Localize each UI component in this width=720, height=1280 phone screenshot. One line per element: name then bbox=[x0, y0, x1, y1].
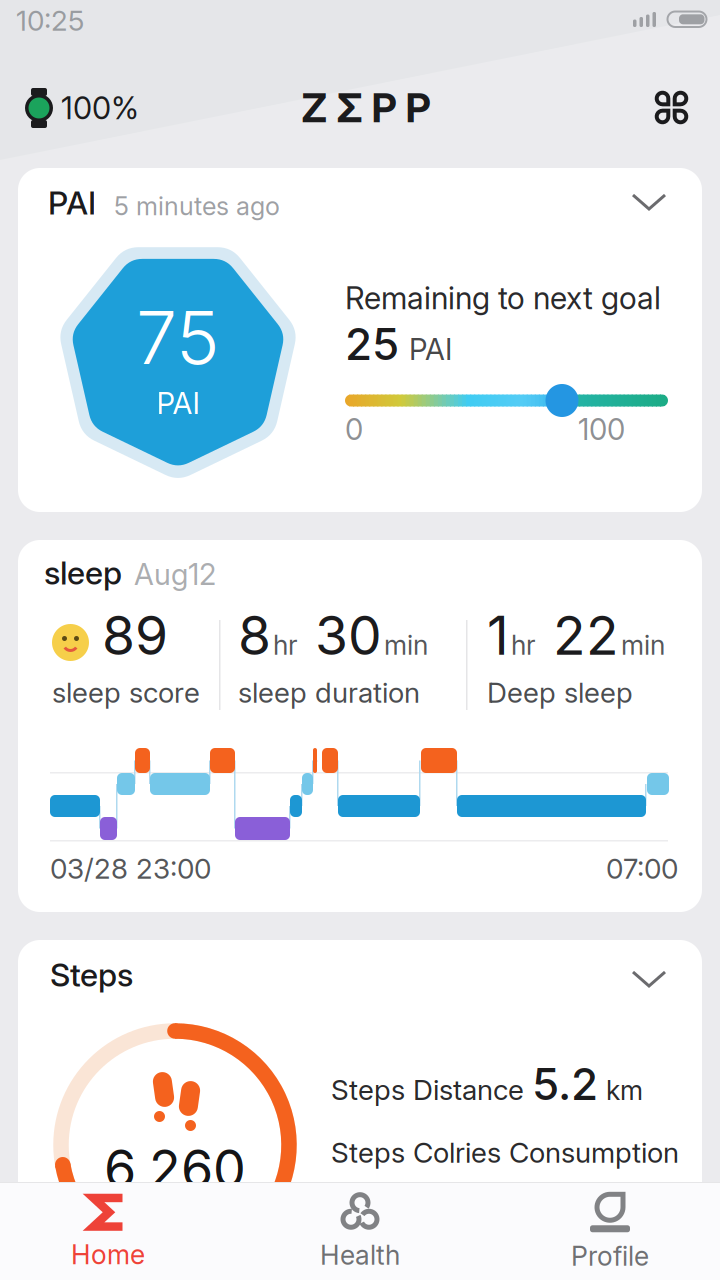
staticText: km bbox=[606, 1074, 643, 1106]
staticText: 03/28 23:00 bbox=[50, 852, 211, 885]
staticText: sleep score bbox=[52, 676, 200, 709]
staticText: Aug12 bbox=[134, 557, 216, 592]
button[interactable]: Home bbox=[8, 1184, 208, 1280]
staticText: 10:25 bbox=[16, 4, 84, 37]
staticText: Steps Distance bbox=[331, 1073, 524, 1106]
staticText: PAI bbox=[409, 332, 452, 367]
staticText: Home bbox=[71, 1239, 145, 1270]
staticText: hr bbox=[511, 629, 536, 661]
staticText: 1 bbox=[487, 604, 509, 667]
staticText: Profile bbox=[571, 1240, 649, 1272]
staticText: 100% bbox=[61, 90, 139, 126]
staticText: 5 minutes ago bbox=[114, 191, 280, 221]
staticText: 6,260 bbox=[104, 1138, 246, 1199]
button[interactable]: Collapse PAI card bbox=[623, 185, 675, 219]
staticText: 8 bbox=[238, 604, 271, 667]
staticText: 75 bbox=[136, 294, 220, 380]
staticText: 100 bbox=[578, 412, 625, 447]
staticText: Steps bbox=[50, 956, 133, 994]
staticText: ZΣPP bbox=[301, 84, 430, 131]
staticText: 89 bbox=[102, 604, 168, 667]
button[interactable]: Watch battery 100% bbox=[25, 88, 139, 128]
button[interactable]: Apps bbox=[655, 91, 688, 124]
button[interactable]: Profile bbox=[510, 1184, 710, 1280]
button[interactable]: Health bbox=[260, 1184, 460, 1280]
staticText: sleep bbox=[44, 554, 122, 592]
button[interactable]: Collapse Steps card bbox=[623, 962, 675, 996]
button[interactable]: Steps 6,260 bbox=[18, 940, 702, 1280]
staticText: PAI bbox=[48, 184, 96, 222]
staticText: min bbox=[384, 629, 428, 661]
staticText: Health bbox=[320, 1239, 400, 1271]
staticText: 07:00 bbox=[606, 852, 678, 885]
staticText: sleep duration bbox=[238, 676, 420, 709]
staticText: min bbox=[621, 629, 665, 661]
staticText: hr bbox=[273, 629, 298, 661]
staticText: 5.2 bbox=[532, 1058, 598, 1110]
staticText: 25 bbox=[345, 318, 399, 370]
staticText: PAI bbox=[156, 386, 199, 421]
staticText: Remaining to next goal bbox=[345, 280, 661, 316]
staticText: Steps Colries Consumption bbox=[331, 1136, 679, 1169]
button[interactable]: Sleep, score 89, duration 8 hours 30 min… bbox=[18, 540, 702, 912]
staticText: 0 bbox=[345, 412, 363, 447]
staticText: Deep sleep bbox=[487, 676, 633, 709]
button[interactable]: PAI 75, 25 to next goal bbox=[18, 168, 702, 512]
staticText: 30 bbox=[300, 604, 382, 667]
staticText: 22 bbox=[538, 604, 619, 667]
